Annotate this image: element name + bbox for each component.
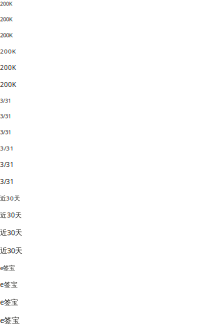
staticText: 近30天 bbox=[0, 210, 22, 219]
staticText: 3/31 bbox=[0, 97, 11, 104]
staticText: 200K bbox=[0, 15, 12, 23]
staticText: e签宝 bbox=[0, 263, 15, 272]
staticText: 200K bbox=[0, 31, 13, 39]
staticText: 200K bbox=[0, 80, 16, 89]
staticText: 3/31 bbox=[0, 112, 11, 120]
staticText: 3/31 bbox=[0, 177, 14, 186]
staticText: e签宝 bbox=[0, 280, 18, 289]
staticText: 近30天 bbox=[0, 194, 20, 202]
staticText: 200K bbox=[0, 47, 16, 55]
staticText: 近30天 bbox=[0, 245, 22, 255]
staticText: 200K bbox=[0, 0, 12, 7]
staticText: 200K bbox=[0, 63, 16, 72]
staticText: 近30天 bbox=[0, 227, 22, 237]
staticText: e签宝 bbox=[0, 315, 20, 325]
staticText: 3/31 bbox=[0, 128, 11, 136]
staticText: e签宝 bbox=[0, 297, 18, 307]
staticText: 3/31 bbox=[0, 144, 14, 152]
staticText: 3/31 bbox=[0, 160, 14, 169]
